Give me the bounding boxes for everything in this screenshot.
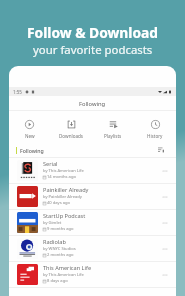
button[interactable]: This American Life bbox=[9, 262, 176, 287]
button[interactable]: More options bbox=[159, 191, 171, 203]
staticText: Playlists bbox=[104, 133, 122, 139]
staticText: by Painkiller Already bbox=[43, 194, 82, 200]
button[interactable]: Painkiller Already bbox=[9, 184, 176, 209]
staticText: 40 days ago bbox=[47, 200, 70, 206]
staticText: Painkiller Already bbox=[43, 186, 89, 194]
staticText: Follow & Download bbox=[27, 23, 159, 42]
button[interactable]: StartUp Podcast bbox=[9, 210, 176, 235]
staticText: Downloads bbox=[59, 133, 84, 139]
staticText: Following bbox=[79, 100, 106, 108]
button[interactable]: Playlists bbox=[92, 111, 134, 142]
staticText: This American Life bbox=[43, 264, 92, 272]
button[interactable]: More options bbox=[159, 243, 171, 255]
staticText: by This American Life bbox=[43, 272, 84, 278]
button[interactable]: Downloads bbox=[50, 111, 92, 142]
button[interactable]: New bbox=[9, 111, 50, 142]
button[interactable]: More options bbox=[159, 269, 171, 281]
staticText: by WNYC Studios bbox=[43, 246, 76, 252]
staticText: New bbox=[25, 133, 35, 139]
staticText: 8 days ago bbox=[47, 278, 68, 284]
button[interactable]: More options bbox=[159, 217, 171, 229]
button[interactable]: Radiolab bbox=[9, 236, 176, 261]
staticText: History bbox=[147, 133, 163, 139]
staticText: Radiolab bbox=[43, 238, 66, 246]
button[interactable]: History bbox=[134, 111, 176, 142]
staticText: StartUp Podcast bbox=[43, 212, 86, 220]
staticText: Following bbox=[20, 147, 44, 154]
button[interactable]: Sort bbox=[157, 146, 165, 154]
button[interactable]: More options bbox=[159, 165, 171, 177]
button[interactable]: Serial bbox=[9, 158, 176, 183]
staticText: 1:55 bbox=[13, 89, 22, 95]
staticText: by Gimlet bbox=[43, 220, 62, 226]
staticText: your favorite podcasts bbox=[33, 42, 153, 58]
staticText: 9 months ago bbox=[47, 226, 74, 232]
staticText: Serial bbox=[43, 160, 58, 168]
staticText: 2 months ago bbox=[47, 252, 74, 258]
staticText: by This American Life bbox=[43, 168, 84, 174]
staticText: 14 months ago bbox=[47, 174, 76, 180]
